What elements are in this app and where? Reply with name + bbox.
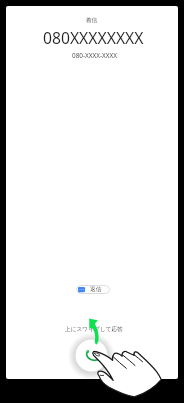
staticText: 上にスワイプして応答	[65, 326, 123, 333]
button[interactable]: 返信	[76, 285, 110, 294]
staticText: 返信	[90, 286, 102, 293]
button[interactable]: Answer call	[71, 335, 112, 376]
staticText: 080-XXXX-XXXX	[72, 51, 118, 60]
staticText: 着信	[86, 17, 98, 24]
staticText: 080XXXXXXXX	[43, 27, 144, 48]
